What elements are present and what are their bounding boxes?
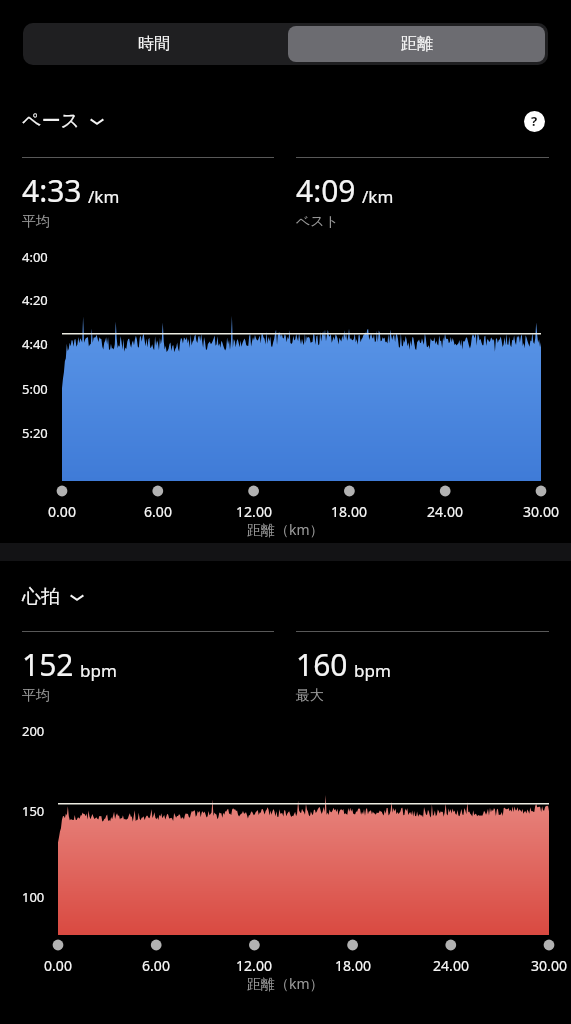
- staticText: ペース: [22, 109, 80, 133]
- staticText: 12.00: [226, 502, 282, 521]
- button[interactable]: 心拍: [22, 585, 85, 609]
- button[interactable]: 時間: [26, 26, 282, 62]
- staticText: 152: [22, 644, 74, 685]
- staticText: 160: [296, 644, 348, 685]
- button[interactable]: 距離: [288, 26, 545, 62]
- staticText: 30.00: [513, 502, 569, 521]
- staticText: 6.00: [128, 956, 184, 975]
- staticText: 5:00: [22, 380, 48, 398]
- staticText: 5:20: [22, 424, 48, 442]
- staticText: 200: [22, 722, 45, 740]
- staticText: 18.00: [321, 502, 377, 521]
- staticText: 4:00: [22, 248, 48, 266]
- staticText: 最大: [296, 687, 324, 705]
- staticText: 4:33: [22, 170, 82, 211]
- staticText: 4:09: [296, 170, 356, 211]
- staticText: /km: [88, 185, 120, 208]
- staticText: 18.00: [325, 956, 381, 975]
- staticText: bpm: [80, 659, 117, 682]
- staticText: 150: [22, 802, 45, 820]
- staticText: 距離: [401, 34, 433, 54]
- staticText: 24.00: [417, 502, 473, 521]
- button[interactable]: ヘルプ: [521, 108, 547, 134]
- staticText: 時間: [138, 34, 170, 54]
- staticText: ベスト: [296, 213, 339, 231]
- staticText: ?: [531, 112, 538, 130]
- staticText: 心拍: [22, 585, 60, 609]
- staticText: 30.00: [521, 956, 571, 975]
- staticText: 100: [22, 888, 45, 906]
- staticText: 4:40: [22, 335, 48, 353]
- staticText: bpm: [354, 659, 391, 682]
- staticText: 0.00: [34, 502, 90, 521]
- staticText: 6.00: [130, 502, 186, 521]
- staticText: 4:20: [22, 291, 48, 309]
- staticText: 12.00: [226, 956, 282, 975]
- staticText: 24.00: [423, 956, 479, 975]
- staticText: 距離（km）: [247, 974, 324, 993]
- staticText: 平均: [22, 213, 50, 231]
- staticText: 0.00: [30, 956, 86, 975]
- button[interactable]: ペース: [22, 109, 105, 133]
- staticText: 距離（km）: [247, 520, 324, 539]
- staticText: 平均: [22, 687, 50, 705]
- staticText: /km: [362, 185, 394, 208]
